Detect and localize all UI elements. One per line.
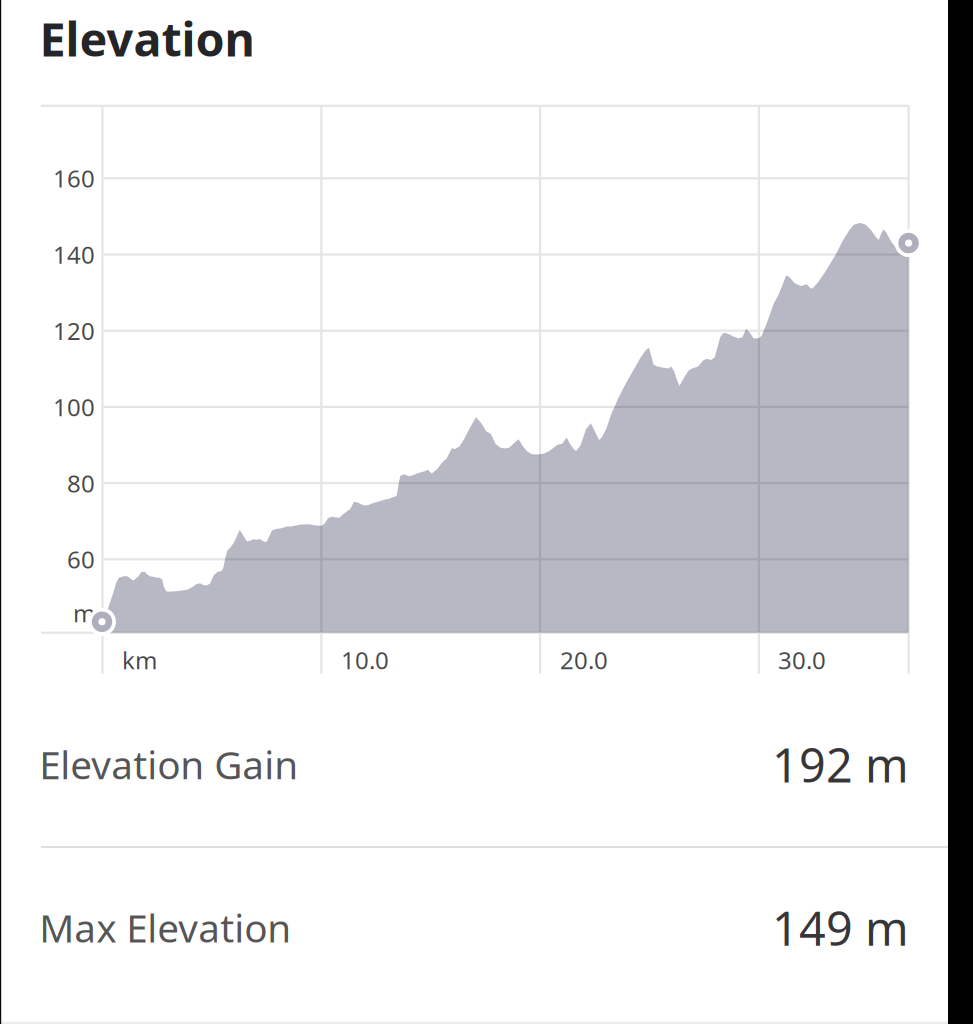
staticText: 192 m [772,733,909,795]
button[interactable]: Elevation Gain [0,682,948,846]
staticText: Max Elevation [39,902,291,953]
staticText: 30.0 [778,644,826,676]
staticText: 20.0 [560,644,608,676]
staticText: Elevation [39,7,254,69]
button[interactable]: Max Elevation [0,846,948,1010]
staticText: 120 [53,315,95,347]
staticText: m [73,597,95,629]
staticText: km [122,644,157,676]
staticText: 140 [53,239,95,270]
staticText: Elevation Gain [39,739,298,790]
staticText: 100 [53,391,95,423]
staticText: 149 m [772,897,909,959]
staticText: 10.0 [341,644,389,676]
staticText: 160 [53,162,95,194]
staticText: 60 [67,543,95,575]
staticText: 80 [67,467,95,499]
